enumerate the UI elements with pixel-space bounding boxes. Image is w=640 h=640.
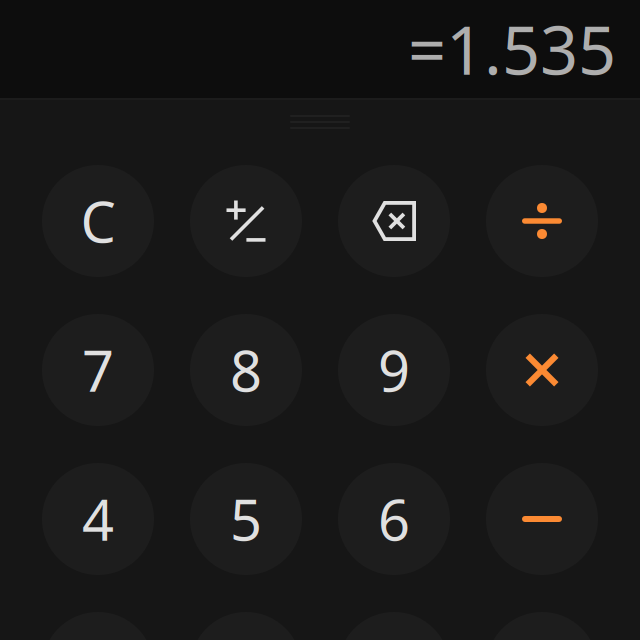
button[interactable]: Toggle sign <box>190 165 302 277</box>
staticText: =1.535 <box>408 5 616 93</box>
staticText: C <box>80 184 115 258</box>
button[interactable]: Add <box>486 612 598 640</box>
button[interactable]: Multiply <box>486 314 598 426</box>
button[interactable]: 2 <box>190 612 302 640</box>
button[interactable]: 4 <box>42 463 154 575</box>
button[interactable]: 3 <box>338 612 450 640</box>
button[interactable]: 8 <box>190 314 302 426</box>
button[interactable]: Subtract <box>486 463 598 575</box>
button[interactable]: 6 <box>338 463 450 575</box>
button[interactable]: 9 <box>338 314 450 426</box>
staticText: 7 <box>82 333 114 407</box>
staticText: 4 <box>82 482 114 556</box>
staticText: 6 <box>378 482 410 556</box>
button[interactable]: C <box>42 165 154 277</box>
staticText: 5 <box>230 482 262 556</box>
staticText: 8 <box>230 333 262 407</box>
button[interactable]: 5 <box>190 463 302 575</box>
staticText: 9 <box>378 333 410 407</box>
button[interactable]: Delete <box>338 165 450 277</box>
button[interactable]: 7 <box>42 314 154 426</box>
button[interactable]: Divide <box>486 165 598 277</box>
button[interactable]: 1 <box>42 612 154 640</box>
